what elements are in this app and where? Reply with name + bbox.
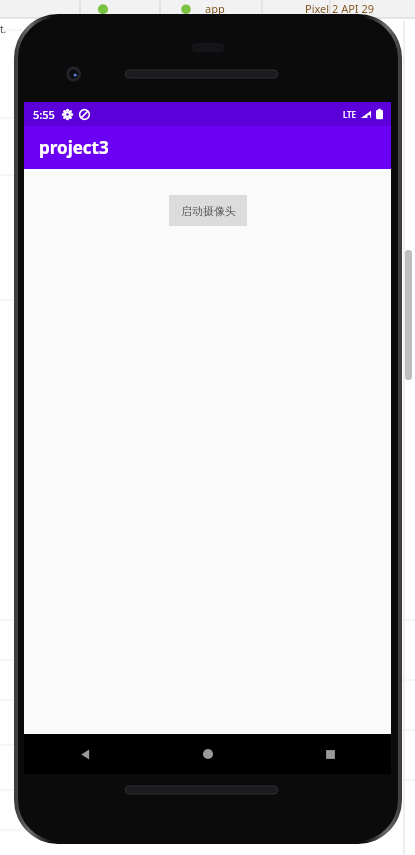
button[interactable]: Recent apps [269,734,391,774]
button[interactable]: 启动摄像头 [169,195,247,226]
staticText: project3 [39,136,109,159]
button[interactable]: Home [147,734,269,774]
button[interactable]: Back [24,734,147,774]
staticText: t. [0,22,7,36]
staticText: app [205,1,225,16]
staticText: 5:55 [33,107,55,122]
staticText: Pixel 2 API 29 [305,1,375,16]
staticText: LTE [343,109,357,120]
staticText: 启动摄像头 [181,204,236,218]
